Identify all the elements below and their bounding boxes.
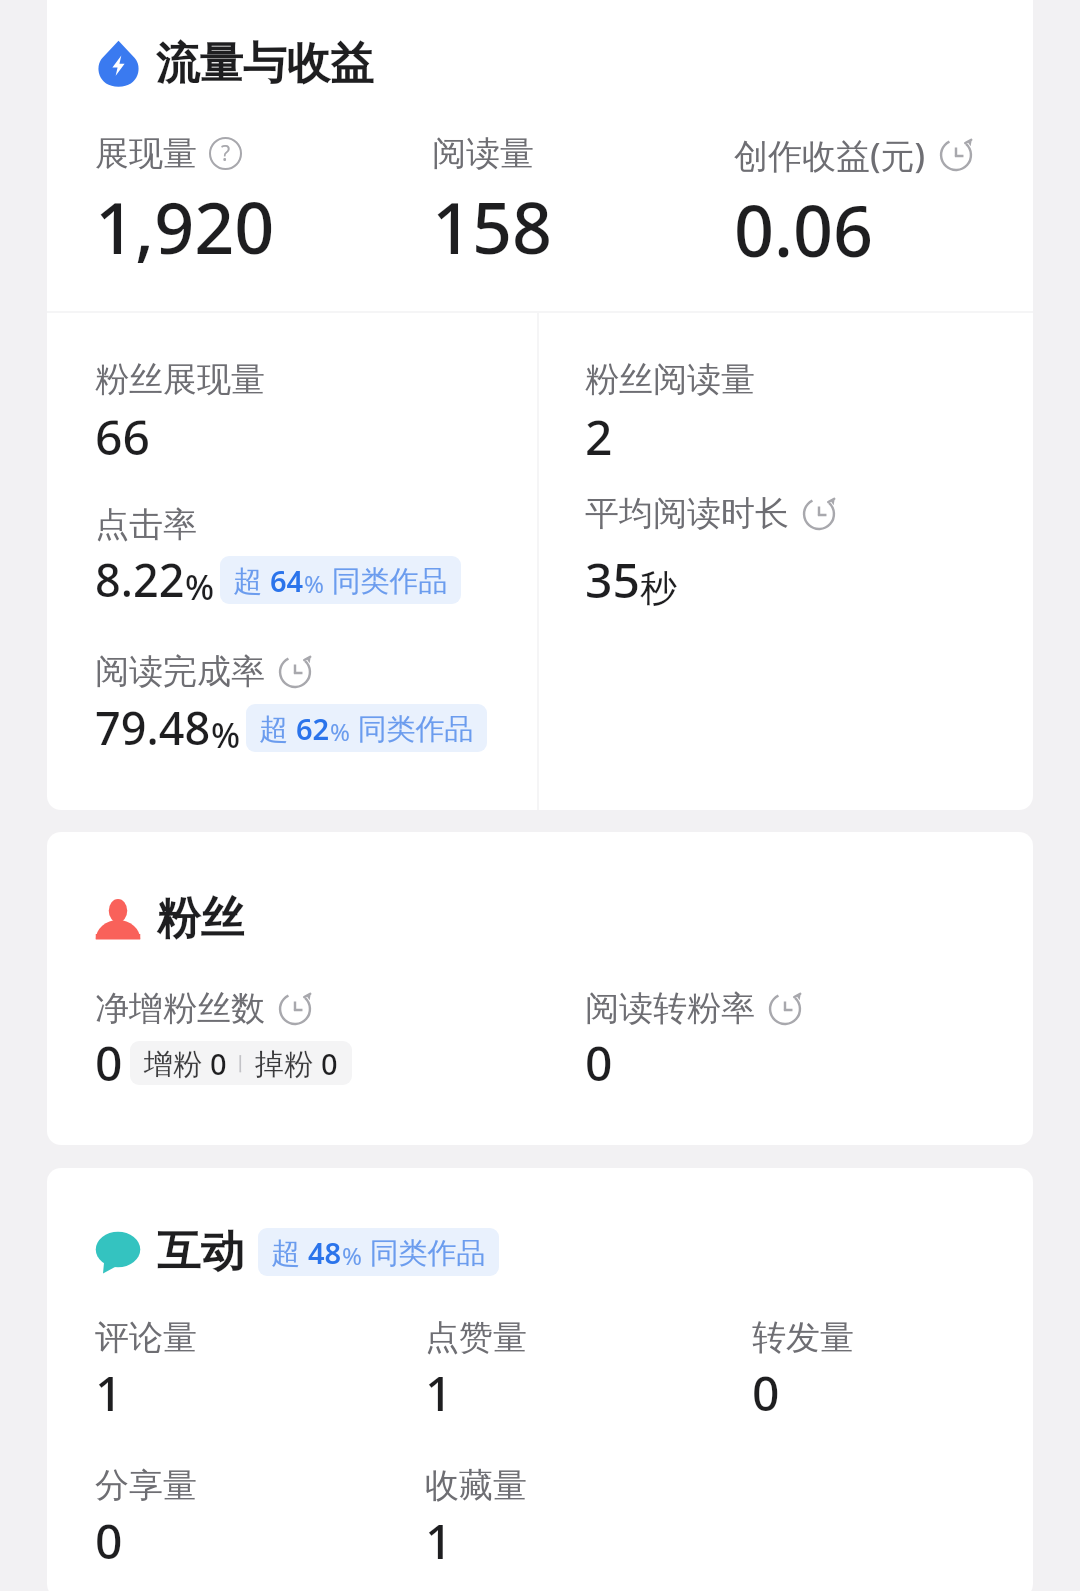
staticText: 展现量 [95,132,197,175]
staticText: 粉丝展现量 [95,358,265,401]
button[interactable]: 转发量 [752,1316,854,1425]
button[interactable]: 粉丝阅读量 [585,358,1032,612]
staticText: 0 [585,1030,613,1095]
staticText: 丨 [227,1051,255,1076]
staticText: 粉丝 [157,891,244,946]
staticText: 收藏量 [425,1464,527,1507]
button[interactable]: 收藏量 [425,1464,752,1573]
button[interactable]: 评论量 [95,1316,425,1425]
staticText: 同类作品 [362,1232,486,1272]
staticText: 1 [425,1360,453,1425]
staticText: 同类作品 [324,560,448,600]
staticText: 64 [270,561,304,600]
staticText: 超 [271,1232,308,1272]
staticText: 增粉 [144,1043,210,1083]
staticText: 点击率 [95,503,197,546]
staticText: 净增粉丝数 [95,987,265,1030]
button[interactable]: 阅读量 [432,132,734,274]
button[interactable]: 增粉 [130,1041,352,1085]
staticText: 48 [308,1233,342,1272]
button[interactable]: 粉丝 [93,891,244,946]
staticText: ? [221,139,231,168]
staticText: 66 [95,404,150,469]
button[interactable]: 阅读转粉率 [585,987,1032,1095]
staticText: % [304,567,324,600]
staticText: 35 [585,547,640,612]
other: 互动 [93,1227,143,1277]
staticText: 8.22 [95,549,185,610]
button[interactable]: 超 [246,704,487,752]
button[interactable]: 点赞量 [425,1316,752,1425]
button[interactable]: 粉丝展现量 [95,358,537,758]
staticText: 0 [752,1360,780,1425]
staticText: % [330,715,350,748]
button[interactable]: 超 [258,1228,499,1276]
staticText: 0.06 [734,182,874,277]
staticText: 转发量 [752,1316,854,1359]
staticText: 评论量 [95,1316,197,1359]
staticText: 掉粉 [255,1043,321,1083]
other: 流量与收益 [95,40,142,87]
staticText: 0 [95,1030,123,1095]
staticText: 158 [432,179,553,274]
staticText: 互动 [157,1224,244,1279]
staticText: 79.48 [95,697,211,758]
staticText: 2 [585,404,613,469]
staticText: 0 [321,1044,338,1083]
button[interactable]: 展现量 [95,132,432,274]
button[interactable]: 互动 [93,1224,499,1279]
staticText: 秒 [640,565,677,612]
staticText: 粉丝阅读量 [585,358,755,401]
button[interactable]: 分享量 [95,1464,425,1573]
staticText: % [211,711,241,758]
button[interactable]: 超 [220,556,461,604]
staticText: 超 [259,708,296,748]
staticText: 62 [296,709,330,748]
staticText: 1 [95,1360,123,1425]
staticText: 0 [95,1508,123,1573]
staticText: 同类作品 [350,708,474,748]
staticText: 阅读量 [432,132,534,175]
staticText: 1 [425,1508,453,1573]
staticText: 1,920 [95,179,275,274]
button[interactable]: 创作收益(元) [734,132,974,277]
staticText: 平均阅读时长 [585,492,789,535]
button[interactable]: 流量与收益 [95,36,374,91]
staticText: 点赞量 [425,1316,527,1359]
staticText: 阅读转粉率 [585,987,755,1030]
staticText: 0 [210,1044,227,1083]
staticText: 创作收益(元) [734,132,926,178]
staticText: 分享量 [95,1464,197,1507]
staticText: 阅读完成率 [95,650,265,693]
other: 粉丝 [93,894,143,944]
staticText: 超 [233,560,270,600]
staticText: % [342,1239,362,1272]
other: 说明 [209,137,242,170]
staticText: 流量与收益 [156,36,374,91]
staticText: % [185,563,215,610]
button[interactable]: 净增粉丝数 [95,987,537,1095]
